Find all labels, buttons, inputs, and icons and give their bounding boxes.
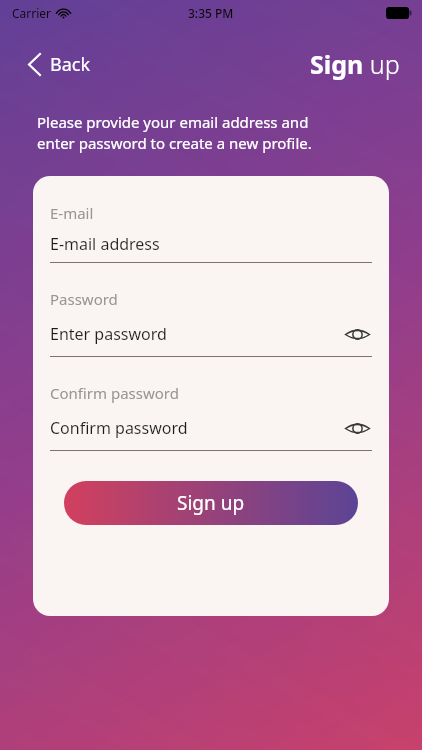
- button[interactable]: Enter password: [50, 319, 372, 349]
- staticText: Back: [50, 52, 91, 77]
- staticText: Sign up: [310, 47, 400, 81]
- staticText: Password: [50, 289, 118, 309]
- staticText: Sign up: [177, 490, 245, 516]
- button[interactable]: E-mail address: [50, 233, 372, 255]
- button[interactable]: Confirm password: [50, 413, 372, 443]
- staticText: 3:35 PM: [188, 5, 234, 21]
- staticText: Confirm password: [50, 383, 179, 403]
- button[interactable]: Show password: [342, 319, 372, 349]
- staticText: Please provide your email address and en…: [37, 112, 312, 154]
- staticText: E-mail: [50, 203, 94, 223]
- staticText: E-mail address: [50, 233, 372, 255]
- button[interactable]: Back: [22, 48, 97, 81]
- button[interactable]: Show password: [342, 413, 372, 443]
- button[interactable]: Sign up: [64, 481, 358, 525]
- staticText: Confirm password: [50, 417, 342, 439]
- staticText: Carrier: [12, 5, 52, 21]
- staticText: Enter password: [50, 323, 342, 345]
